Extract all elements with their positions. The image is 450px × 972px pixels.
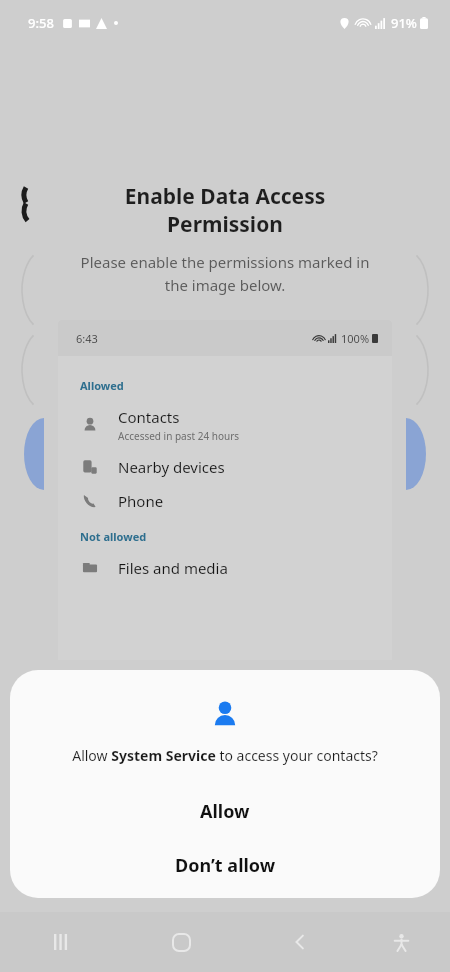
staticText: Allow System Service to access your cont… [30, 746, 420, 765]
button[interactable]: Files and media [58, 558, 392, 578]
button[interactable]: Don’t allow [10, 845, 440, 885]
staticText: 91% [391, 14, 417, 32]
staticText: 100% [341, 331, 370, 346]
staticText: Phone [118, 491, 164, 511]
staticText: Nearby devices [118, 457, 225, 477]
button[interactable]: Home [157, 918, 205, 966]
button[interactable]: Allow [10, 791, 440, 831]
button[interactable]: Accessibility [377, 918, 425, 966]
staticText: Allow [200, 799, 250, 824]
staticText: 9:58 [28, 14, 54, 32]
button[interactable]: Phone [58, 491, 392, 511]
button[interactable]: Contacts [58, 407, 392, 443]
staticText: Enable Data Access Permission [60, 182, 390, 238]
staticText: Allowed [80, 378, 124, 393]
staticText: 6:43 [76, 331, 98, 346]
staticText: Please enable the permissions marked in … [40, 252, 410, 295]
button[interactable]: Back [276, 918, 324, 966]
button[interactable]: Nearby devices [58, 457, 392, 477]
staticText: Files and media [118, 558, 228, 578]
button[interactable]: Recent apps [38, 918, 86, 966]
staticText: Contacts [118, 407, 180, 427]
staticText: Don’t allow [175, 853, 276, 878]
staticText: Accessed in past 24 hours [118, 429, 240, 443]
staticText: Not allowed [80, 529, 147, 544]
